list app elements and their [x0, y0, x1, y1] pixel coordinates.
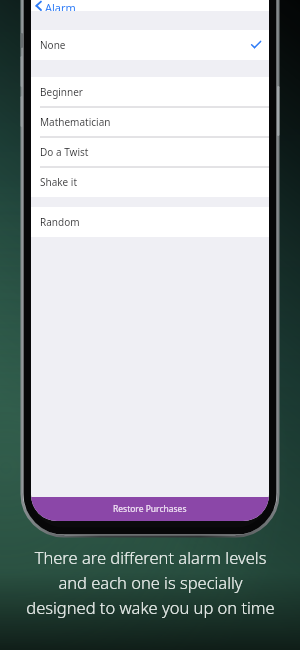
button[interactable]: Mathematician — [31, 107, 269, 137]
button[interactable]: Shake it — [31, 167, 269, 197]
staticText: Mathematician — [40, 115, 111, 129]
staticText: There are different alarm levels and eac… — [26, 546, 275, 618]
staticText: Beginner — [40, 85, 83, 99]
button[interactable]: Back to Alarm — [31, 0, 269, 11]
staticText: Random — [40, 215, 80, 229]
button[interactable]: Do a Twist — [31, 137, 269, 167]
staticText: Alarm — [45, 0, 76, 11]
button[interactable]: Restore Purchases — [31, 497, 269, 521]
staticText: Shake it — [40, 175, 78, 189]
staticText: Do a Twist — [40, 145, 89, 159]
button[interactable]: Random — [31, 207, 269, 237]
button[interactable]: None — [31, 30, 269, 60]
staticText: None — [40, 38, 66, 52]
button[interactable]: Beginner — [31, 77, 269, 107]
staticText: Restore Purchases — [113, 503, 187, 515]
